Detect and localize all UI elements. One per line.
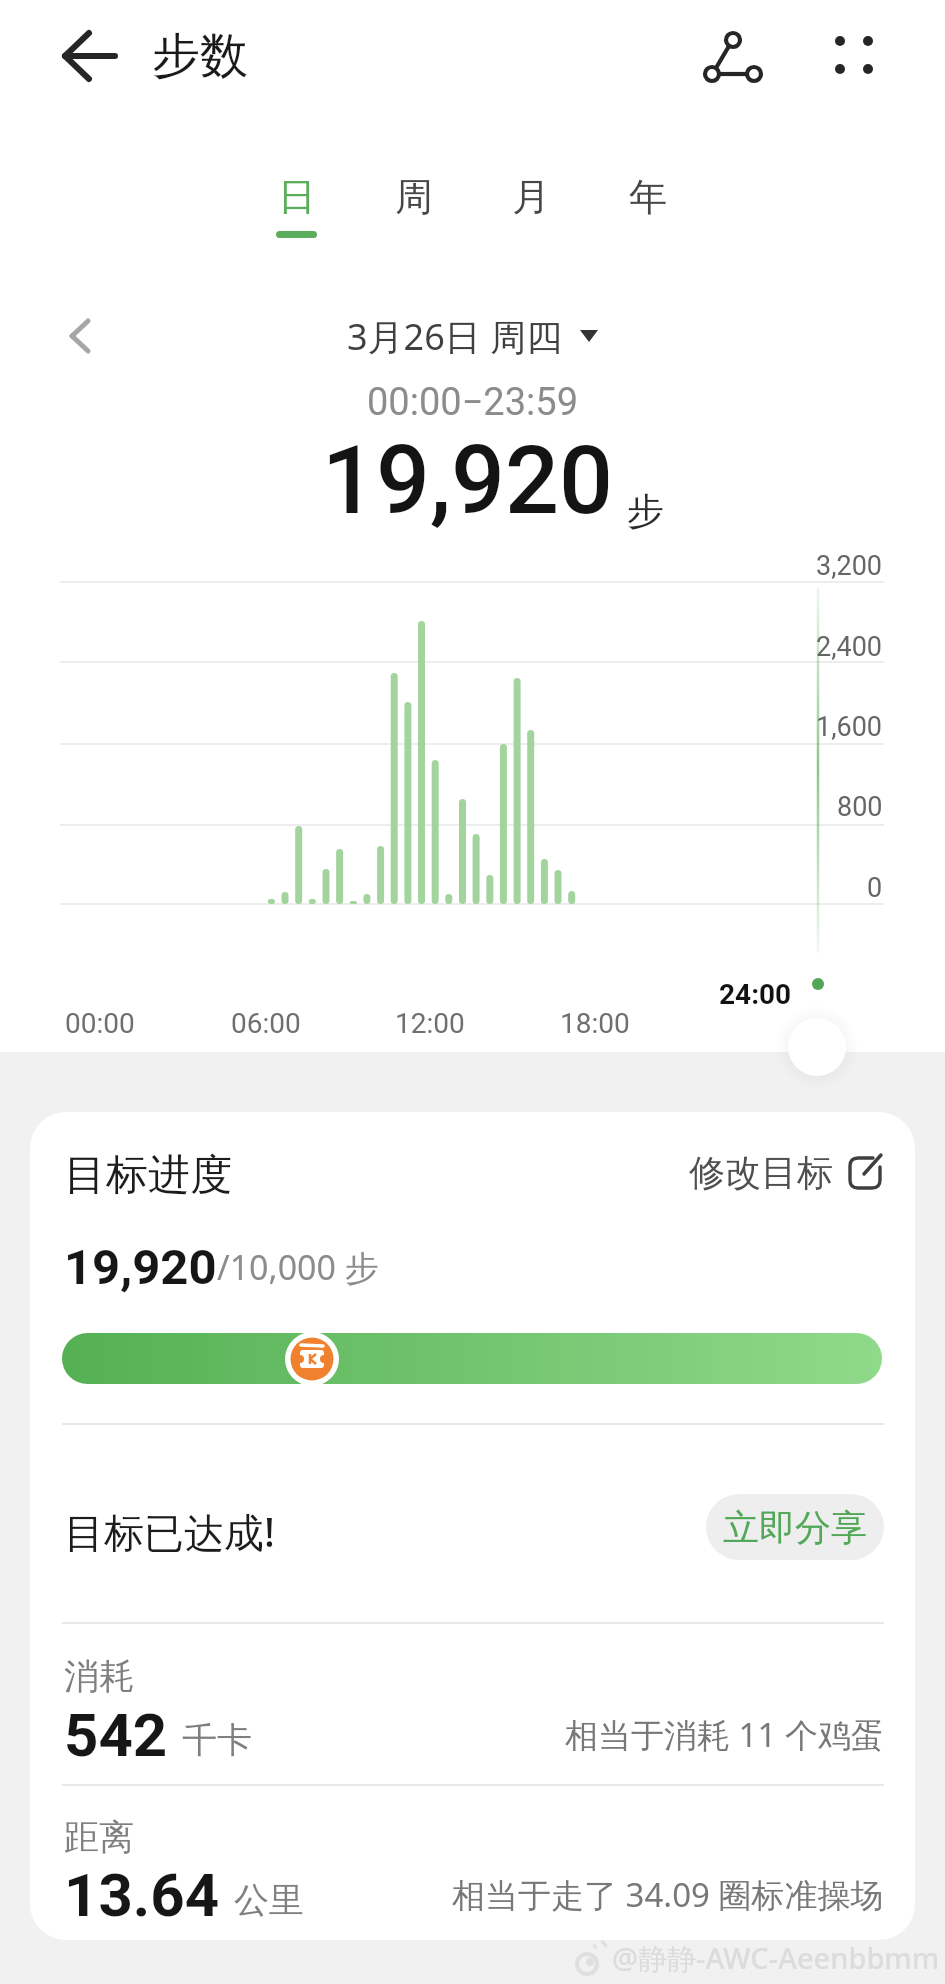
button[interactable]: 立即分享 [706,1494,884,1560]
staticText: 800 [837,791,883,823]
staticText: 步数 [152,26,248,86]
staticText: 13.64 [64,1860,220,1922]
staticText: 00:00‒23:59 [367,380,578,422]
button[interactable]: 月 [472,166,589,228]
staticText: 19,920 [64,1239,217,1296]
staticText: 相当于消耗 11 个鸡蛋 [565,1712,884,1756]
button[interactable]: 日 [238,166,355,228]
staticText: 日 [278,173,316,221]
staticText: 0 [867,872,883,904]
staticText: 月 [512,173,550,221]
staticText: 19,920 [322,425,613,535]
button[interactable] [690,18,776,96]
staticText: 相当于走了 34.09 圈标准操场 [452,1872,884,1916]
staticText: 修改目标 [689,1150,833,1195]
staticText: 06:00 [231,1007,301,1040]
staticText: 542 [64,1700,168,1762]
staticText: 24:00 [719,978,792,1011]
staticText: /10,000 步 [217,1244,379,1290]
button[interactable]: 3月26日 周四 [0,312,945,360]
staticText: @静静-AWC-Aeenbbmm [612,1938,940,1978]
button[interactable] [52,308,108,364]
staticText: 公里 [234,1878,304,1922]
staticText: 00:00 [65,1007,135,1040]
staticText: 目标已达成! [64,1504,275,1552]
staticText: 千卡 [182,1718,252,1762]
staticText: 周 [395,173,433,221]
staticText: 12:00 [395,1007,465,1040]
staticText: 18:00 [560,1007,630,1040]
staticText: 消耗 [64,1654,134,1694]
staticText: 2,400 [816,631,883,663]
staticText: 目标进度 [64,1149,232,1202]
staticText: 年 [629,173,667,221]
button[interactable] [44,20,134,96]
button[interactable]: 修改目标 [630,1142,885,1202]
button[interactable]: 周 [355,166,472,228]
staticText: 步 [627,488,664,535]
staticText: 3,200 [816,550,883,582]
button[interactable]: 年 [589,166,706,228]
staticText: 1,600 [816,711,883,743]
staticText: 距离 [64,1815,134,1855]
button[interactable] [820,18,900,96]
staticText: 3月26日 周四 [347,312,563,360]
staticText: 立即分享 [723,1505,867,1550]
